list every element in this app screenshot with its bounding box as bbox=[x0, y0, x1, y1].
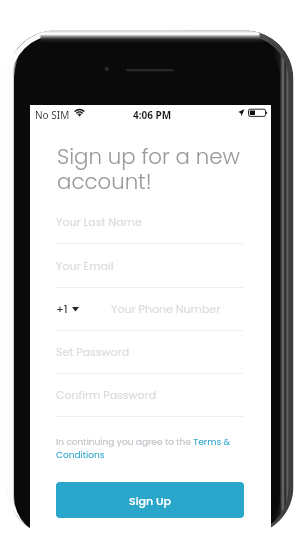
staticText: Sign up for a new account! bbox=[57, 142, 252, 196]
staticText: Set Password bbox=[56, 344, 130, 359]
button[interactable] bbox=[56, 243, 244, 288]
staticText: Confirm Password bbox=[56, 387, 157, 402]
button[interactable] bbox=[56, 287, 244, 331]
staticText: Your Phone Number bbox=[111, 301, 221, 316]
staticText: Your Email bbox=[56, 258, 114, 273]
staticText: Sign Up bbox=[129, 493, 172, 508]
staticText: 4:06 PM bbox=[133, 108, 172, 122]
staticText: No SIM bbox=[35, 108, 70, 122]
staticText: In continuing you agree to the Terms & C… bbox=[56, 436, 244, 461]
button[interactable] bbox=[56, 373, 244, 417]
button[interactable]: Sign Up bbox=[56, 482, 244, 518]
button[interactable] bbox=[56, 205, 244, 244]
button[interactable] bbox=[56, 330, 244, 374]
staticText: +1 bbox=[56, 301, 68, 316]
staticText: Your Last Name bbox=[56, 214, 142, 229]
